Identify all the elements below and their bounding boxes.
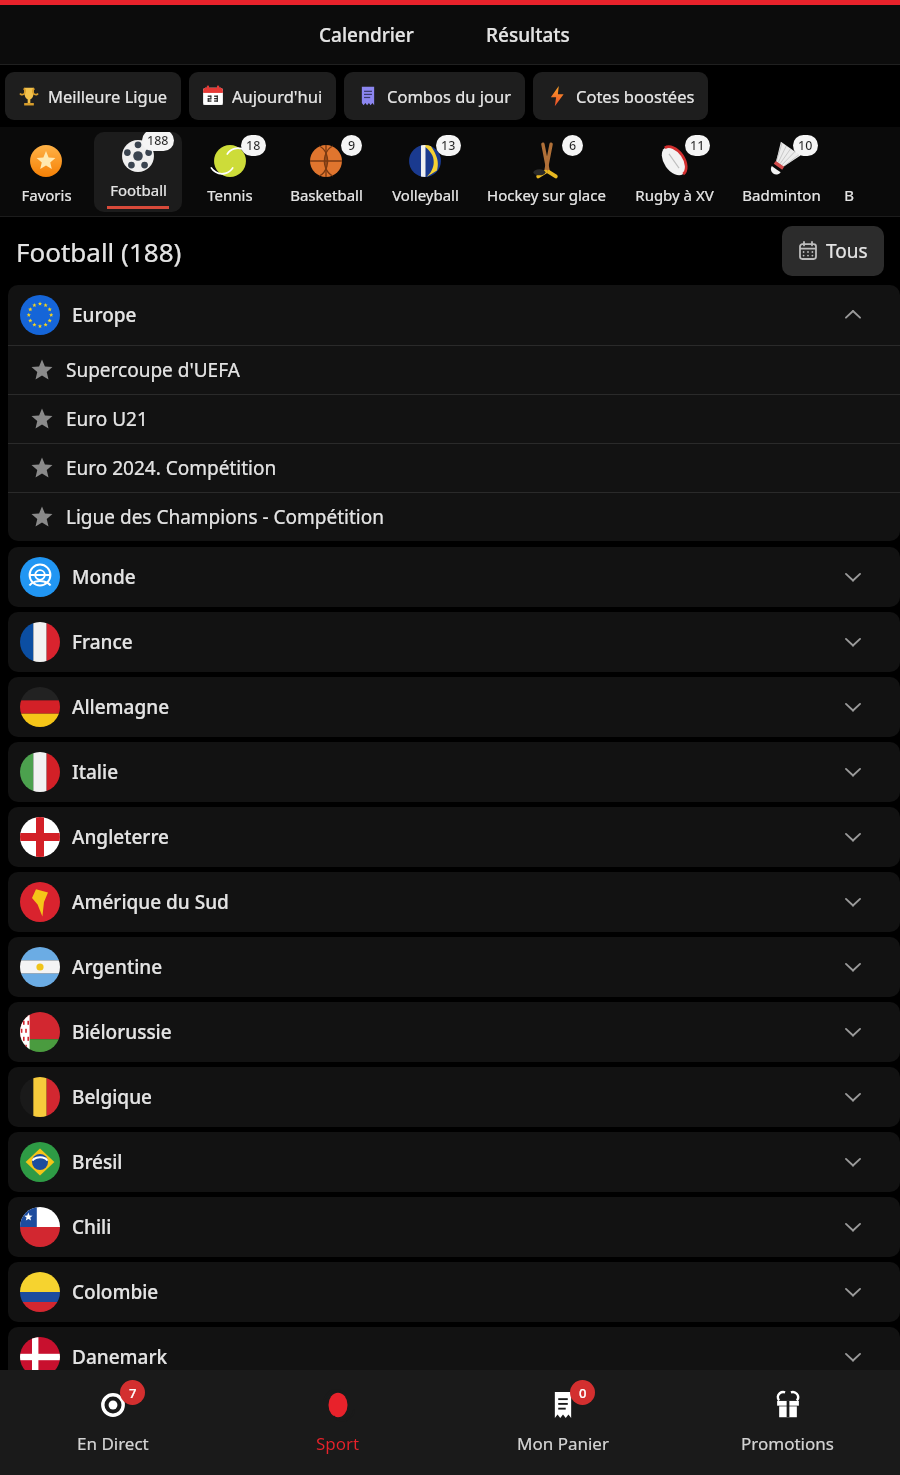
button[interactable]: Calendrier: [313, 16, 420, 54]
staticText: Rugby à XV: [635, 185, 714, 205]
staticText: Europe: [72, 302, 137, 328]
button[interactable]: Danemark: [8, 1327, 900, 1387]
staticText: Angleterre: [72, 824, 169, 850]
staticText: Résultats: [486, 22, 570, 48]
staticText: 9: [348, 137, 356, 154]
staticText: 18: [246, 137, 261, 154]
button[interactable]: 13: [378, 127, 472, 217]
button[interactable]: Monde: [8, 547, 900, 607]
button[interactable]: 188: [94, 132, 182, 212]
button[interactable]: Allemagne: [8, 677, 900, 737]
staticText: Brésil: [72, 1149, 123, 1175]
staticText: Euro 2024. Compétition: [66, 455, 277, 481]
button[interactable]: 0: [450, 1370, 675, 1475]
staticText: Aujourd'hui: [232, 85, 323, 107]
staticText: Calendrier: [319, 22, 414, 48]
staticText: Football: [110, 180, 167, 200]
staticText: Tennis: [207, 185, 253, 205]
staticText: Football (188): [16, 234, 182, 269]
staticText: Belgique: [72, 1084, 152, 1110]
staticText: En Direct: [77, 1432, 149, 1455]
button[interactable]: Italie: [8, 742, 900, 802]
button[interactable]: B: [836, 127, 862, 217]
staticText: 7: [129, 1384, 137, 1402]
button[interactable]: Sport: [225, 1370, 450, 1475]
button[interactable]: Promotions: [675, 1370, 900, 1475]
button[interactable]: Supercoupe d'UEFA: [8, 346, 900, 394]
staticText: 13: [441, 137, 456, 154]
button[interactable]: Meilleure Ligue: [5, 72, 181, 120]
button[interactable]: Euro U21: [8, 395, 900, 443]
button[interactable]: Euro 2024. Compétition: [8, 444, 900, 492]
staticText: Sport: [316, 1432, 360, 1455]
button[interactable]: Tous: [782, 226, 884, 276]
staticText: Monde: [72, 564, 136, 590]
button[interactable]: Colombie: [8, 1262, 900, 1322]
staticText: Ligue des Champions - Compétition: [66, 504, 384, 530]
staticText: Argentine: [72, 954, 163, 980]
staticText: Biélorussie: [72, 1019, 172, 1045]
staticText: Euro U21: [66, 406, 148, 432]
staticText: 10: [798, 137, 813, 154]
button[interactable]: Biélorussie: [8, 1002, 900, 1062]
button[interactable]: 10: [731, 127, 832, 217]
staticText: 188: [147, 132, 169, 149]
button[interactable]: Amérique du Sud: [8, 872, 900, 932]
staticText: Badminton: [742, 185, 821, 205]
button[interactable]: Brésil: [8, 1132, 900, 1192]
button[interactable]: 6: [476, 127, 617, 217]
staticText: Combos du jour: [387, 85, 512, 107]
staticText: Basketball: [290, 185, 363, 205]
staticText: 6: [569, 137, 577, 154]
button[interactable]: Belgique: [8, 1067, 900, 1127]
button[interactable]: 18: [186, 127, 274, 217]
button[interactable]: Cotes boostées: [533, 72, 708, 120]
button[interactable]: Angleterre: [8, 807, 900, 867]
button[interactable]: 9: [278, 127, 374, 217]
staticText: Supercoupe d'UEFA: [66, 357, 240, 383]
staticText: France: [72, 629, 133, 655]
button[interactable]: Favoris: [2, 127, 90, 217]
staticText: Volleyball: [392, 185, 459, 205]
staticText: Favoris: [21, 185, 72, 205]
button[interactable]: 11: [621, 127, 727, 217]
staticText: Tous: [826, 238, 868, 264]
staticText: Danemark: [72, 1344, 168, 1370]
button[interactable]: France: [8, 612, 900, 672]
staticText: B: [844, 185, 854, 205]
staticText: Chili: [72, 1214, 112, 1240]
button[interactable]: Ligue des Champions - Compétition: [8, 493, 900, 541]
staticText: Mon Panier: [517, 1432, 609, 1455]
staticText: Cotes boostées: [576, 85, 695, 107]
button[interactable]: Chili: [8, 1197, 900, 1257]
staticText: Amérique du Sud: [72, 889, 229, 915]
button[interactable]: Résultats: [480, 16, 576, 54]
staticText: 11: [690, 137, 705, 154]
staticText: 0: [579, 1384, 587, 1402]
button[interactable]: 7: [0, 1370, 225, 1475]
button[interactable]: Aujourd'hui: [189, 72, 336, 120]
staticText: Promotions: [741, 1432, 834, 1455]
staticText: Italie: [72, 759, 119, 785]
button[interactable]: Argentine: [8, 937, 900, 997]
staticText: Hockey sur glace: [487, 185, 606, 205]
button[interactable]: Europe: [8, 285, 900, 345]
button[interactable]: Combos du jour: [344, 72, 525, 120]
staticText: Allemagne: [72, 694, 170, 720]
staticText: Meilleure Ligue: [48, 85, 168, 107]
staticText: Colombie: [72, 1279, 159, 1305]
